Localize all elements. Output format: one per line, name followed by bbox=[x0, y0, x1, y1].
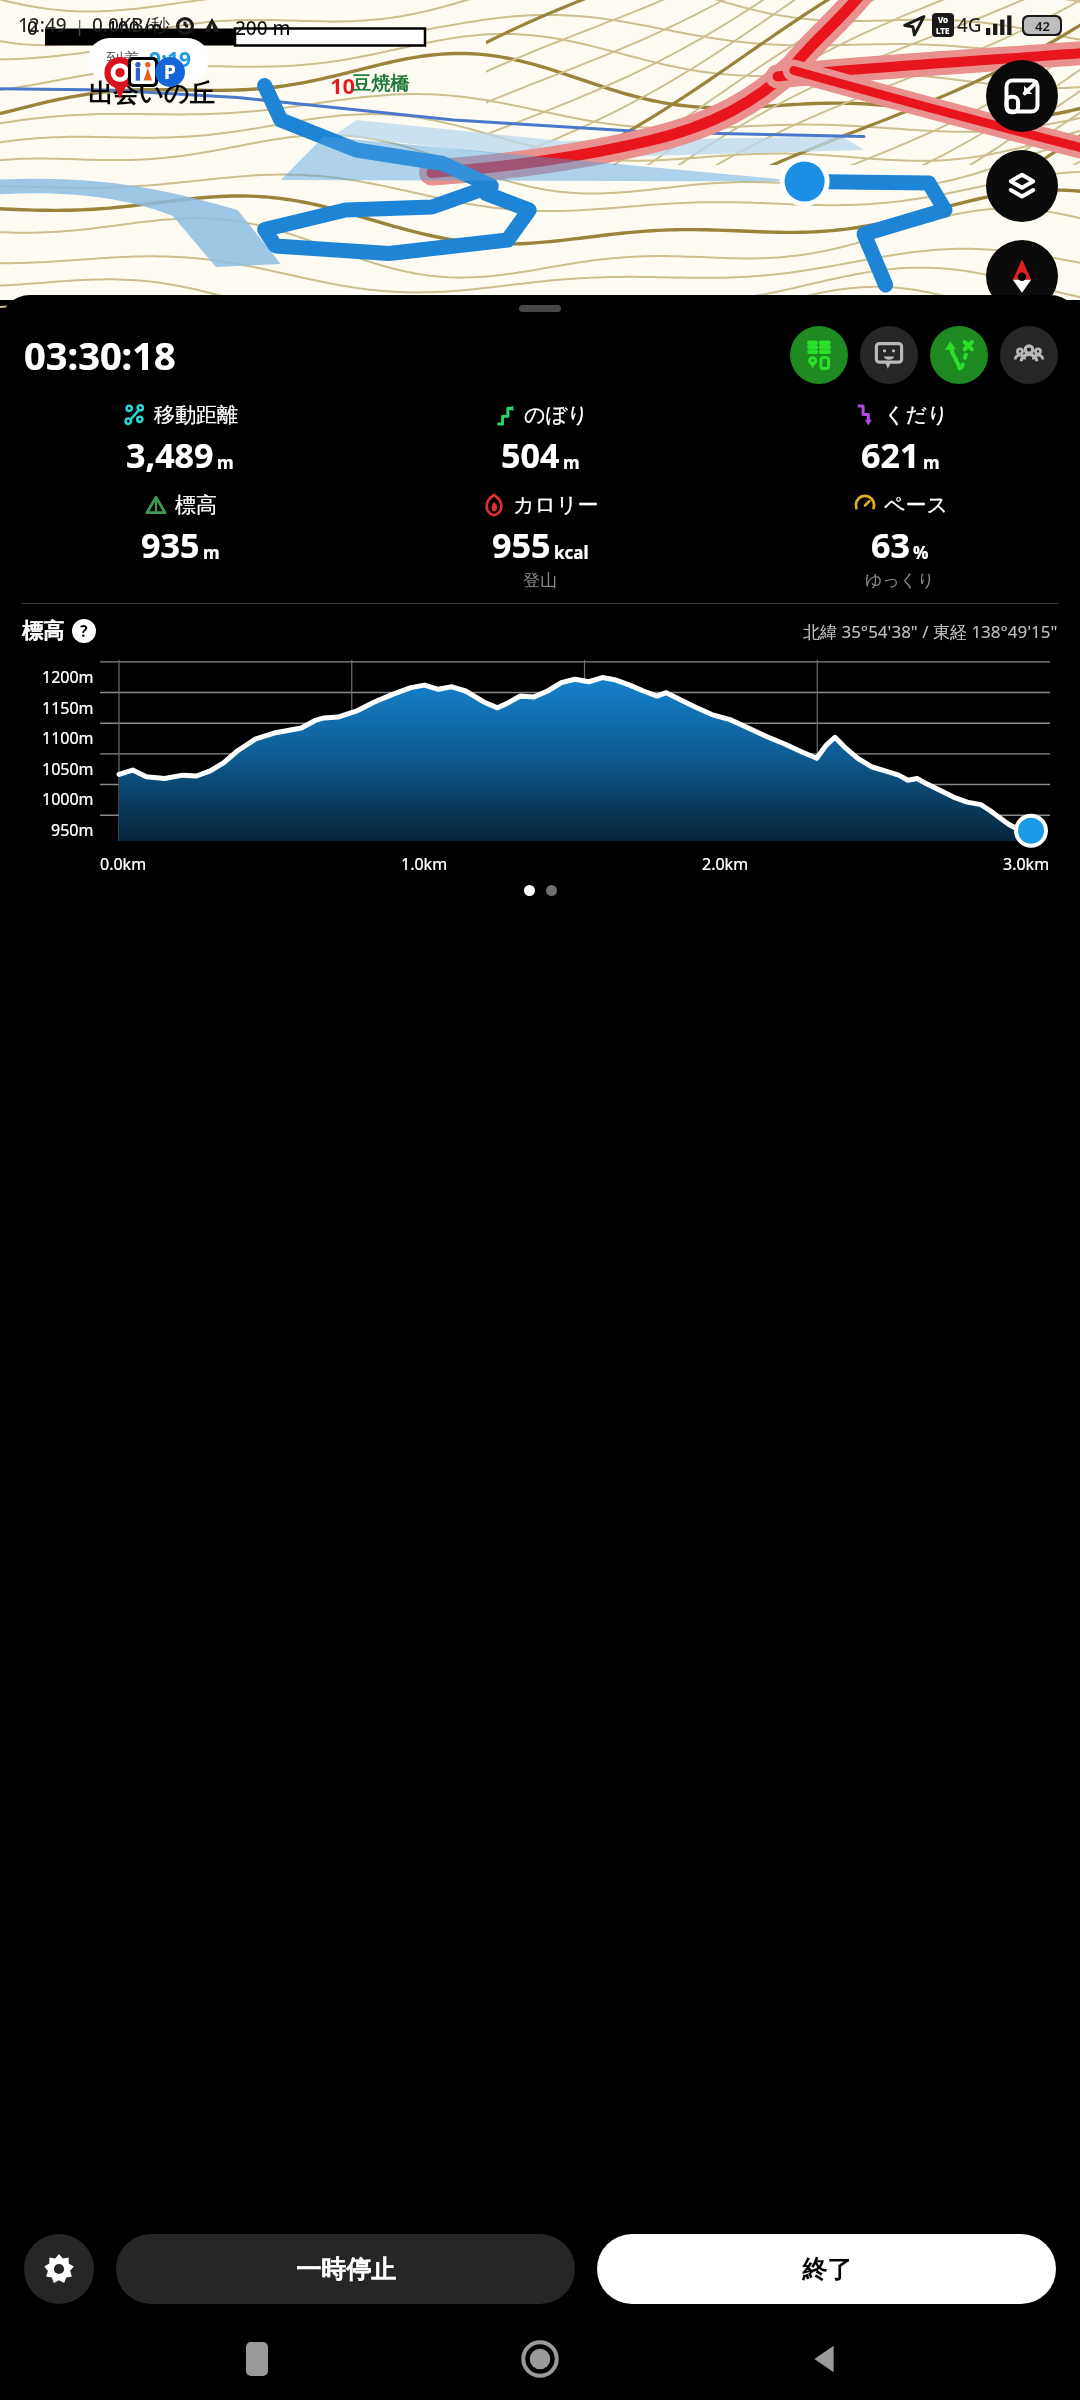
button[interactable]: Recents bbox=[230, 2332, 284, 2386]
staticText: 955 bbox=[492, 522, 551, 568]
staticText: 621 bbox=[861, 432, 920, 478]
button[interactable]: Group bbox=[1000, 326, 1058, 384]
button[interactable]: Collapse map bbox=[986, 60, 1058, 132]
staticText: 出会いの丘 bbox=[88, 78, 215, 109]
button[interactable]: Settings bbox=[24, 2234, 94, 2304]
button[interactable]: Route deviation bbox=[930, 326, 988, 384]
staticText: 1.0km bbox=[401, 853, 448, 875]
button[interactable]: 一時停止 bbox=[116, 2234, 575, 2304]
staticText: 終了 bbox=[802, 2254, 852, 2285]
staticText: 北緯 35°54'38" / 東経 138°49'15" bbox=[803, 620, 1058, 643]
staticText: m bbox=[203, 541, 220, 564]
staticText: ペース bbox=[884, 492, 948, 518]
staticText: 0.0km bbox=[100, 853, 147, 875]
staticText: 標高 bbox=[175, 492, 217, 518]
button[interactable]: Waypoints bbox=[790, 326, 848, 384]
staticText: LTE bbox=[936, 25, 950, 36]
button[interactable]: Map layers bbox=[986, 150, 1058, 222]
staticText: 1200m bbox=[42, 666, 94, 688]
staticText: m bbox=[923, 451, 940, 474]
staticText: 豆焼橋 bbox=[352, 72, 409, 96]
button[interactable]: Messages bbox=[860, 326, 918, 384]
staticText: P bbox=[164, 59, 176, 85]
staticText: 935 bbox=[141, 522, 200, 568]
staticText: Vo bbox=[938, 14, 949, 25]
staticText: m bbox=[563, 451, 580, 474]
staticText: くだり bbox=[884, 402, 949, 428]
staticText: 63 bbox=[871, 522, 910, 568]
button[interactable]: Help bbox=[72, 619, 96, 643]
staticText: 100 m bbox=[107, 15, 163, 41]
staticText: 3.0km bbox=[1003, 853, 1050, 875]
staticText: 950m bbox=[51, 819, 94, 841]
staticText: kcal bbox=[554, 541, 589, 564]
staticText: 1000m bbox=[42, 788, 94, 810]
staticText: 一時停止 bbox=[296, 2254, 396, 2285]
staticText: 12:49 bbox=[18, 12, 67, 38]
button[interactable]: Back bbox=[797, 2332, 851, 2386]
staticText: ? bbox=[80, 620, 88, 642]
button[interactable]: Home bbox=[513, 2332, 567, 2386]
staticText: 10 bbox=[330, 70, 356, 100]
staticText: 42 bbox=[1035, 17, 1050, 34]
staticText: 2.0km bbox=[702, 853, 749, 875]
staticText: 3,489 bbox=[126, 432, 214, 478]
staticText: 0 bbox=[27, 15, 38, 41]
staticText: m bbox=[217, 451, 234, 474]
staticText: カロリー bbox=[513, 492, 599, 518]
staticText: 03:30:18 bbox=[24, 329, 176, 381]
staticText: ゆっくり bbox=[865, 570, 935, 591]
staticText: 移動距離 bbox=[154, 402, 238, 428]
staticText: 1050m bbox=[42, 758, 94, 780]
staticText: 200 m bbox=[235, 15, 291, 41]
staticText: のぼり bbox=[524, 402, 589, 428]
staticText: % bbox=[913, 541, 929, 564]
staticText: | bbox=[75, 14, 85, 37]
staticText: 9:19 bbox=[149, 45, 191, 74]
button[interactable]: Compass bbox=[986, 240, 1058, 312]
staticText: 1150m bbox=[42, 697, 94, 719]
staticText: 1100m bbox=[42, 727, 94, 749]
button[interactable]: 終了 bbox=[597, 2234, 1056, 2304]
staticText: 標高 bbox=[22, 618, 64, 644]
staticText: 504 bbox=[501, 432, 560, 478]
staticText: 登山 bbox=[523, 570, 557, 591]
staticText: 0.0KB/秒 bbox=[92, 12, 170, 38]
staticText: 4G bbox=[957, 12, 982, 38]
staticText: 到着 bbox=[106, 49, 140, 70]
